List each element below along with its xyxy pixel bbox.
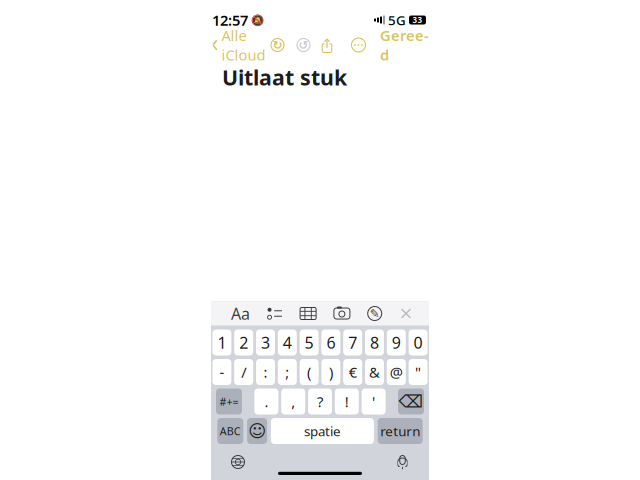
staticText: 33 [412,15,422,25]
staticText: spatie [304,422,341,440]
button[interactable]: Close keyboard [399,306,413,320]
staticText: 🔕 [251,14,264,26]
button[interactable]: Delete [398,388,424,414]
button[interactable]: ' [362,388,386,414]
button[interactable]: @ [387,359,406,385]
button[interactable]: 2 [234,329,253,355]
button[interactable]: : [256,359,275,385]
staticText: ✎ [370,307,380,320]
button[interactable]: Emoji [247,418,267,444]
button[interactable]: ( [300,359,319,385]
staticText: € [349,362,357,382]
staticText: & [369,362,380,382]
staticText: : [263,362,267,382]
staticText: - [219,362,224,382]
staticText: ↺ [298,38,308,52]
button[interactable]: 3 [256,329,275,355]
button[interactable]: 5 [300,329,319,355]
staticText: ' [372,392,375,411]
button[interactable]: return [378,418,423,444]
staticText: . [264,392,268,411]
button[interactable]: Undo [270,38,284,52]
button[interactable]: Alle iCloud [211,25,265,64]
staticText: 5G [388,11,406,29]
staticText: ! [345,392,349,411]
button[interactable]: Share [320,37,334,53]
staticText: , [291,392,295,411]
staticText: Alle iCloud [221,25,265,64]
button[interactable]: ! [335,388,359,414]
staticText: " [415,362,421,382]
button[interactable]: 9 [387,329,406,355]
staticText: 8 [370,332,379,353]
button[interactable]: #+= [216,388,242,414]
button[interactable]: Gereed [380,25,429,64]
staticText: Aa [231,303,250,324]
staticText: 2 [239,332,248,353]
staticText: 7 [348,332,357,353]
staticText: / [241,362,246,382]
button[interactable]: 4 [278,329,297,355]
button[interactable]: Markup [367,306,382,321]
staticText: ↺ [272,38,282,52]
staticText: Gereed [380,25,429,64]
staticText: ) [329,362,333,382]
staticText: ( [307,362,311,382]
button[interactable]: € [343,359,362,385]
button[interactable]: & [365,359,384,385]
button[interactable]: 1 [212,329,231,355]
button[interactable]: ) [321,359,340,385]
staticText: ; [285,362,289,382]
staticText: @ [390,362,403,382]
staticText: ⌫ [398,392,423,411]
staticText: #+= [219,394,238,409]
button[interactable]: " [409,359,428,385]
button[interactable]: ? [308,388,332,414]
button[interactable]: Redo [296,38,310,52]
button[interactable]: Next keyboard [231,455,245,469]
staticText: 5 [305,332,314,353]
button[interactable]: Dictate [396,454,409,470]
staticText: ☺ [248,421,266,441]
button[interactable]: . [254,388,278,414]
staticText: Uitlaat stuk [222,63,347,91]
button[interactable]: spatie [271,418,374,444]
button[interactable]: More [351,37,366,52]
button[interactable]: ; [278,359,297,385]
button[interactable]: 6 [321,329,340,355]
staticText: 4 [283,332,292,353]
button[interactable]: Text format [231,303,250,324]
staticText: 1 [217,332,226,353]
staticText: 0 [414,332,423,353]
staticText: ? [317,392,323,411]
button[interactable]: Camera [333,306,350,320]
staticText: ABC [220,424,241,438]
staticText: return [380,422,420,440]
button[interactable]: / [234,359,253,385]
button[interactable]: ABC [217,418,243,444]
staticText: 9 [392,332,401,353]
staticText: 3 [261,332,270,353]
button[interactable]: 0 [409,329,428,355]
staticText: 12:57 [212,10,248,30]
button[interactable]: - [212,359,231,385]
button[interactable]: 7 [343,329,362,355]
button[interactable]: Table [300,307,317,320]
button[interactable]: Checklist [267,307,283,320]
button[interactable]: , [281,388,305,414]
button[interactable]: 8 [365,329,384,355]
staticText: 6 [326,332,335,353]
